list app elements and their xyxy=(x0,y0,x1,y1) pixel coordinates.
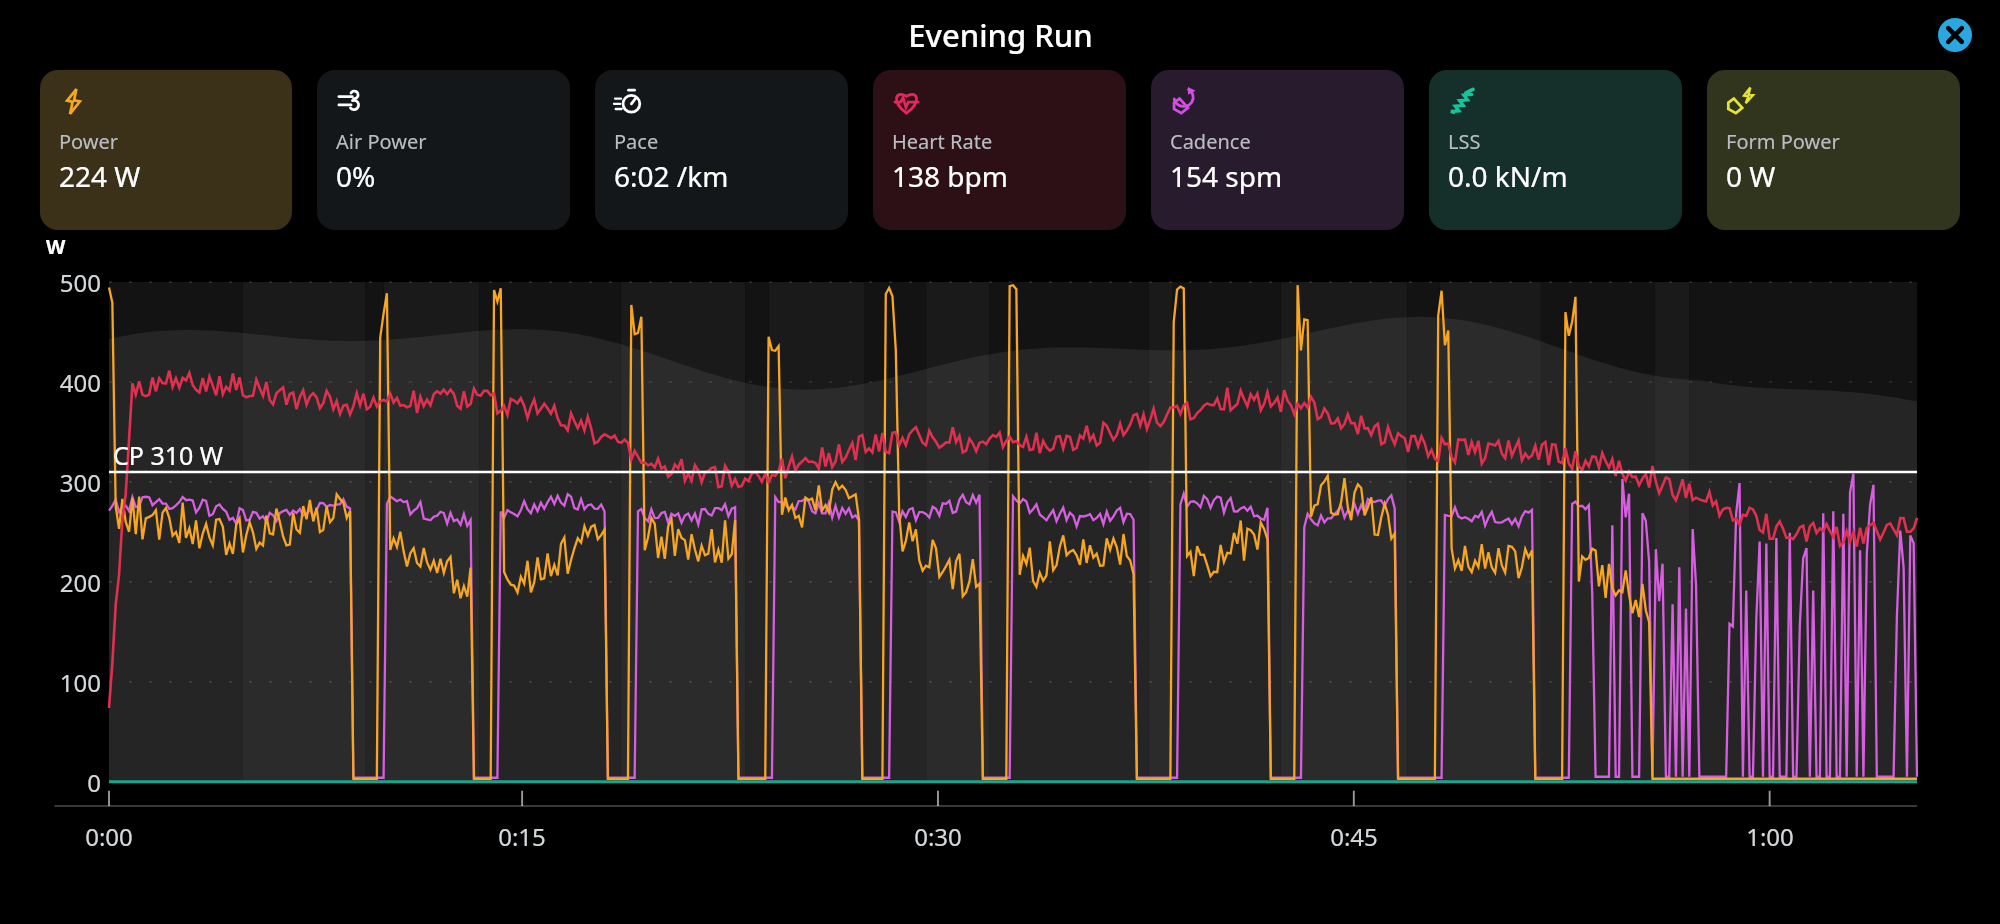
staticText: 100 xyxy=(59,666,101,699)
staticText: 224 W xyxy=(59,157,141,195)
staticText: LSS xyxy=(1448,128,1481,155)
button[interactable]: Cadence xyxy=(1151,70,1404,230)
staticText: 0:00 xyxy=(85,820,133,853)
staticText: 0 W xyxy=(1726,157,1776,195)
staticText: 0:15 xyxy=(498,820,546,853)
staticText: CP 310 W xyxy=(113,438,224,472)
staticText: W xyxy=(46,233,66,260)
staticText: 0:30 xyxy=(914,820,962,853)
staticText: Form Power xyxy=(1726,128,1840,155)
staticText: 6:02 /km xyxy=(614,157,729,195)
button[interactable]: Form Power xyxy=(1707,70,1960,230)
staticText: Heart Rate xyxy=(892,128,993,155)
staticText: 500 xyxy=(59,266,101,299)
staticText: Pace xyxy=(614,128,659,155)
staticText: 138 bpm xyxy=(892,157,1008,195)
button[interactable]: Pace xyxy=(595,70,848,230)
button[interactable]: Air Power xyxy=(317,70,570,230)
staticText: 200 xyxy=(59,566,101,599)
staticText: 400 xyxy=(59,366,101,399)
staticText: Cadence xyxy=(1170,128,1251,155)
button[interactable]: Power xyxy=(40,70,292,230)
button[interactable]: Heart Rate xyxy=(873,70,1126,230)
button[interactable]: LSS xyxy=(1429,70,1682,230)
staticText: Power xyxy=(59,128,119,155)
button[interactable]: Close xyxy=(1933,13,1977,57)
staticText: 154 spm xyxy=(1170,157,1283,195)
staticText: Air Power xyxy=(336,128,427,155)
staticText: 0% xyxy=(336,157,376,195)
staticText: 300 xyxy=(59,466,101,499)
staticText: 0 xyxy=(87,766,101,799)
staticText: Evening Run xyxy=(908,14,1093,56)
staticText: 0:45 xyxy=(1330,820,1378,853)
staticText: 0.0 kN/m xyxy=(1448,157,1568,195)
staticText: 1:00 xyxy=(1746,820,1794,853)
